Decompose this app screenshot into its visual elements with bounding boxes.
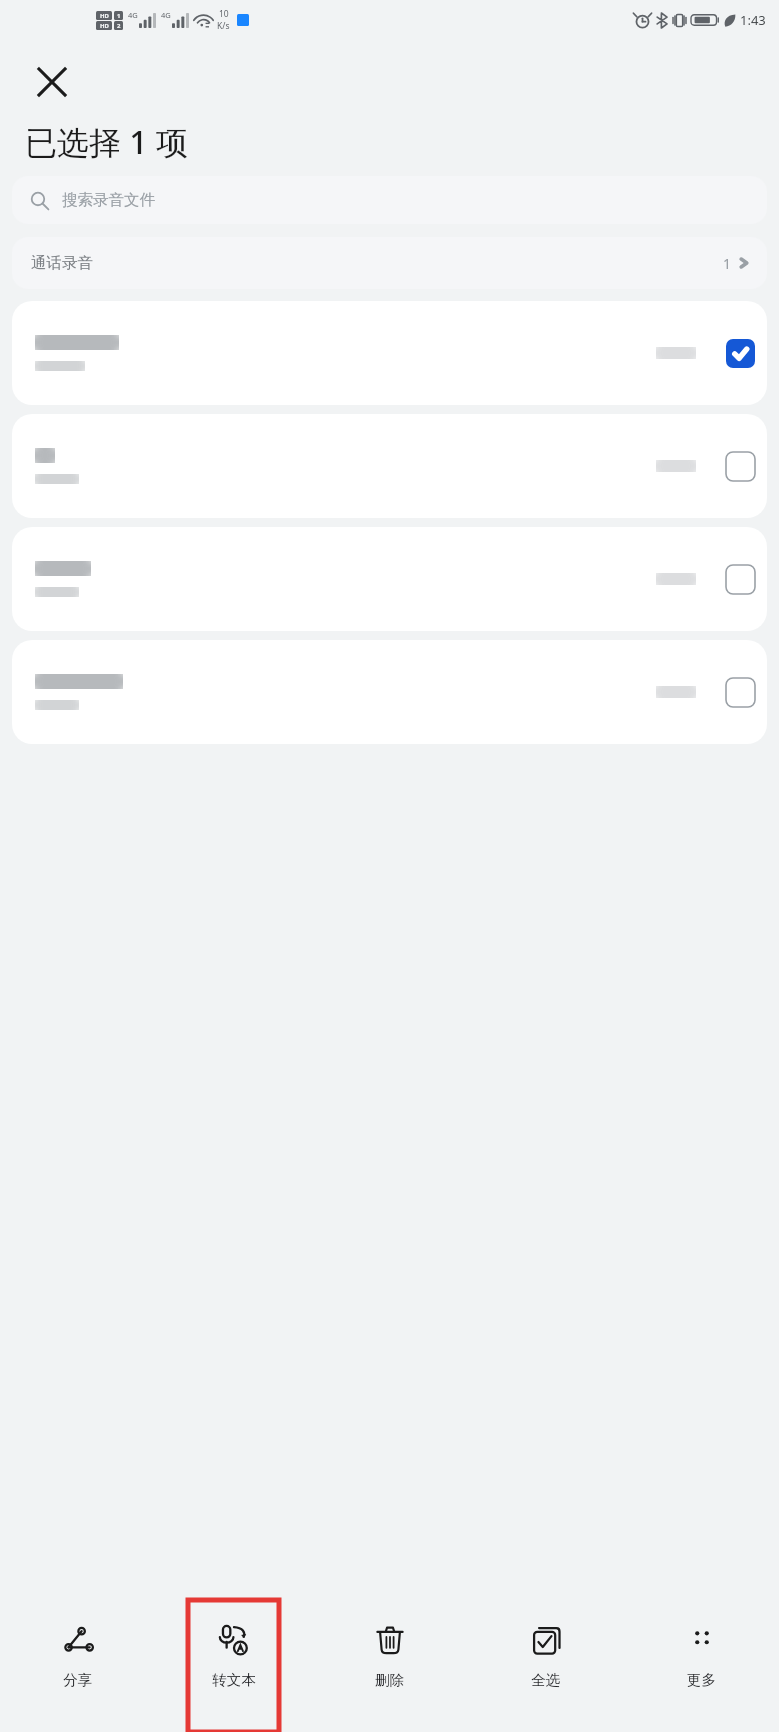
staticText: 转文本: [212, 1671, 256, 1689]
staticText: K/s: [217, 20, 230, 32]
button[interactable]: 更多: [656, 1600, 747, 1732]
staticText: 1: [723, 254, 732, 273]
staticText: 2: [117, 22, 121, 30]
staticText: 已选择 1 项: [25, 120, 188, 164]
button[interactable]: 未选中: [12, 414, 767, 518]
staticText: 删除: [375, 1671, 404, 1689]
button[interactable]: 通话录音: [12, 237, 767, 289]
button[interactable]: 转文本: [188, 1600, 279, 1732]
button[interactable]: 未选中: [12, 527, 767, 631]
button[interactable]: 关闭: [24, 54, 80, 110]
staticText: 4G: [128, 10, 138, 20]
staticText: 10: [219, 8, 229, 20]
button[interactable]: 分享: [32, 1600, 123, 1732]
button[interactable]: 未选中: [12, 640, 767, 744]
button[interactable]: 搜索录音文件: [12, 176, 767, 224]
staticText: HD: [100, 12, 109, 20]
button[interactable]: 删除: [344, 1600, 435, 1732]
button[interactable]: 已选中: [12, 301, 767, 405]
staticText: 搜索录音文件: [62, 190, 155, 210]
staticText: 通话录音: [31, 253, 93, 273]
staticText: 更多: [687, 1671, 716, 1689]
button[interactable]: 未选中: [718, 557, 762, 601]
button[interactable]: 全选: [500, 1600, 591, 1732]
staticText: HD: [100, 22, 109, 30]
button[interactable]: 未选中: [718, 444, 762, 488]
staticText: 分享: [63, 1671, 92, 1689]
staticText: 1: [117, 12, 121, 20]
staticText: 全选: [531, 1671, 560, 1689]
staticText: 4G: [161, 10, 171, 20]
button[interactable]: 未选中: [718, 670, 762, 714]
staticText: 1:43: [740, 11, 766, 29]
button[interactable]: 已选中: [718, 331, 762, 375]
